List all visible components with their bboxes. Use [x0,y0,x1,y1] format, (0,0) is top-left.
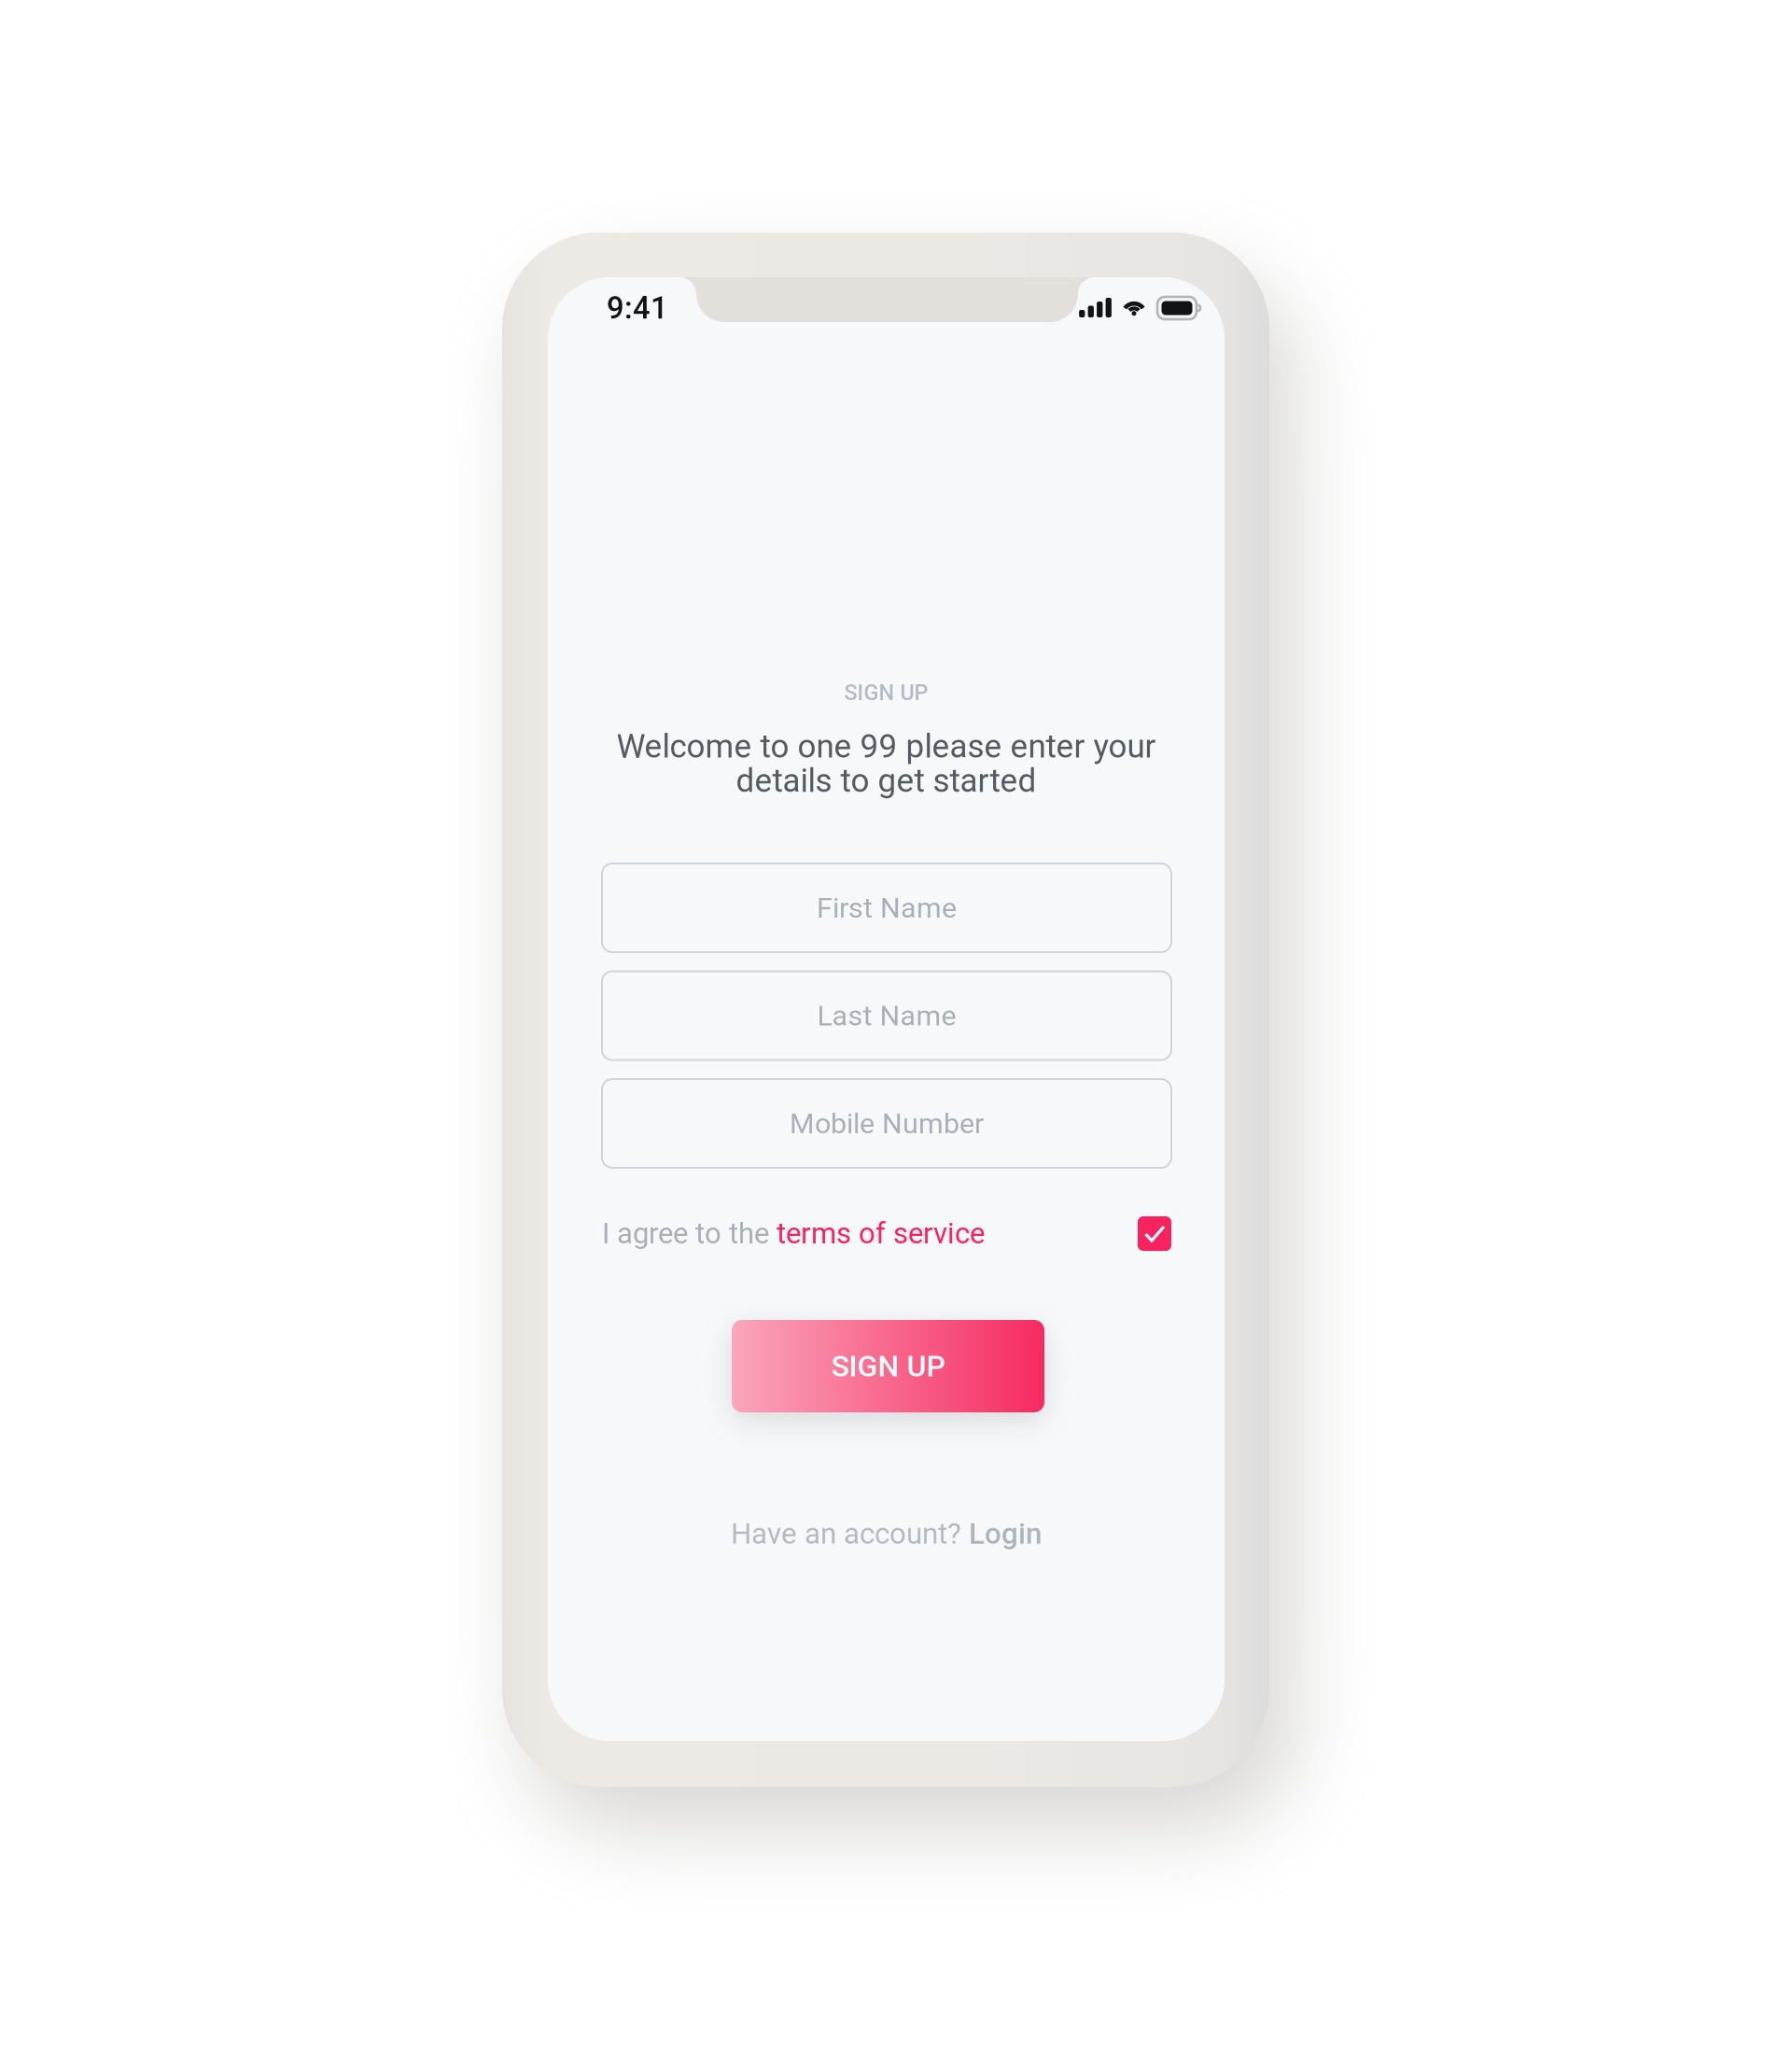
staticText: Last Name [817,999,956,1032]
staticText: Mobile Number [790,1107,984,1140]
staticText: First Name [817,891,957,924]
button[interactable]: I agree to the [602,1216,985,1251]
button[interactable]: Last Name [602,971,1171,1060]
button[interactable]: Mobile Number [602,1079,1171,1168]
staticText: SIGN UP [844,680,928,705]
staticText: Login [969,1517,1042,1551]
button[interactable]: Agree to terms of service [1138,1216,1171,1251]
staticText: I agree to the [602,1217,777,1251]
staticText: Have an account? [731,1517,969,1551]
staticText: SIGN UP [831,1349,945,1384]
button[interactable]: First Name [602,863,1171,952]
button[interactable]: SIGN UP [732,1320,1044,1412]
staticText: Welcome to one 99 please enter your [616,727,1156,765]
staticText: terms of service [777,1217,985,1251]
staticText: details to get started [736,762,1036,800]
staticText: 9:41 [607,290,668,326]
button[interactable]: Have an account? [548,1515,1225,1552]
